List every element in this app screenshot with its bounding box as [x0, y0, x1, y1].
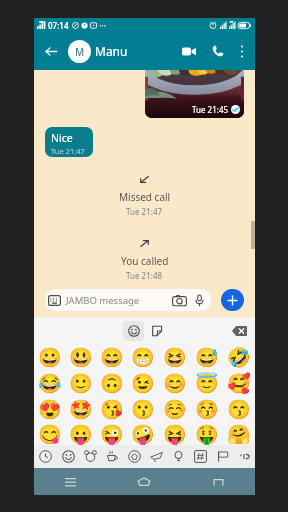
staticText: 😄: [100, 346, 124, 368]
staticText: 😚: [195, 398, 219, 420]
button[interactable]: 🤩: [65, 396, 96, 422]
button[interactable]: 😍: [34, 396, 65, 422]
button[interactable]: Call: [208, 41, 228, 61]
staticText: 😛: [69, 423, 93, 445]
button[interactable]: 😀: [34, 344, 65, 370]
button[interactable]: M: [68, 40, 91, 63]
button[interactable]: 🤑: [191, 422, 223, 445]
button[interactable]: 😁: [127, 344, 159, 370]
button[interactable]: 😉: [127, 370, 159, 396]
staticText: 😗: [131, 398, 155, 420]
button[interactable]: 🤗: [223, 422, 255, 445]
staticText: 😉: [131, 372, 155, 394]
staticText: 😁: [131, 346, 155, 368]
staticText: 😝: [163, 423, 187, 445]
button[interactable]: Send: [221, 289, 244, 311]
staticText: 😃: [69, 346, 93, 368]
staticText: ☺️: [163, 398, 187, 420]
button[interactable]: JAMBO message: [45, 289, 211, 311]
button[interactable]: 🤪: [127, 422, 159, 445]
button[interactable]: 😄: [96, 344, 127, 370]
button[interactable]: Stickers: [147, 321, 167, 341]
button[interactable]: ball: [123, 445, 145, 468]
staticText: 🤗: [227, 423, 251, 445]
staticText: 🤑: [195, 423, 219, 445]
button[interactable]: Emoji: [123, 321, 144, 341]
staticText: You called: [121, 254, 169, 268]
button[interactable]: 😃: [65, 344, 96, 370]
button[interactable]: 😅: [191, 344, 223, 370]
button[interactable]: Recents: [34, 468, 107, 495]
button[interactable]: 🙂: [65, 370, 96, 396]
button[interactable]: More options: [234, 43, 250, 59]
staticText: Missed call: [119, 190, 171, 204]
button[interactable]: 😛: [65, 422, 96, 445]
staticText: Tue 21:48: [126, 270, 163, 281]
button[interactable]: ☺️: [159, 396, 191, 422]
staticText: 😀: [38, 346, 62, 368]
staticText: 😙: [227, 398, 251, 420]
staticText: 🤩: [69, 398, 93, 420]
staticText: 07:14: [48, 20, 69, 31]
staticText: Tue 21:45: [192, 104, 229, 115]
staticText: Manu: [95, 43, 128, 59]
button[interactable]: flag: [211, 445, 233, 468]
staticText: 😋: [38, 423, 62, 445]
button[interactable]: Back: [181, 468, 255, 495]
button[interactable]: hash: [189, 445, 211, 468]
button[interactable]: 😋: [34, 422, 65, 445]
staticText: JAMBO message: [66, 294, 140, 307]
staticText: Nice: [51, 131, 73, 145]
staticText: 🥰: [227, 372, 251, 394]
button[interactable]: 😘: [96, 396, 127, 422]
button[interactable]: clock: [34, 445, 57, 468]
button[interactable]: 🤣: [223, 344, 255, 370]
button[interactable]: Back: [40, 40, 62, 62]
staticText: Tue 21:47: [51, 146, 85, 156]
button[interactable]: Tue 21:45: [145, 70, 244, 118]
button[interactable]: 🙃: [96, 370, 127, 396]
button[interactable]: smiley: [57, 445, 79, 468]
button[interactable]: bear: [79, 445, 101, 468]
button[interactable]: 😇: [191, 370, 223, 396]
button[interactable]: cup: [101, 445, 123, 468]
button[interactable]: plane: [145, 445, 167, 468]
button[interactable]: Missed call: [34, 176, 255, 217]
button[interactable]: bulb: [167, 445, 189, 468]
button[interactable]: 😜: [96, 422, 127, 445]
button[interactable]: Video call: [178, 40, 200, 62]
staticText: 🤪: [131, 423, 155, 445]
staticText: 😆: [163, 346, 187, 368]
staticText: 😘: [100, 398, 124, 420]
button[interactable]: 😆: [159, 344, 191, 370]
button[interactable]: 😂: [34, 370, 65, 396]
button[interactable]: Backspace: [230, 324, 248, 338]
staticText: 😂: [38, 372, 62, 394]
staticText: 🤣: [227, 346, 251, 368]
button[interactable]: 😊: [159, 370, 191, 396]
staticText: 😊: [163, 372, 187, 394]
button[interactable]: Nice: [45, 127, 93, 157]
button[interactable]: 😙: [223, 396, 255, 422]
button[interactable]: You called: [34, 240, 255, 281]
staticText: 🙃: [100, 372, 124, 394]
staticText: 😅: [195, 346, 219, 368]
staticText: 😍: [38, 398, 62, 420]
button[interactable]: 😚: [191, 396, 223, 422]
button[interactable]: 😗: [127, 396, 159, 422]
button[interactable]: Home: [107, 468, 181, 495]
staticText: 😇: [195, 372, 219, 394]
button[interactable]: face: [233, 445, 255, 468]
button[interactable]: 😝: [159, 422, 191, 445]
staticText: 😜: [100, 423, 124, 445]
staticText: Tue 21:47: [126, 206, 163, 217]
staticText: 🙂: [69, 372, 93, 394]
button[interactable]: 🥰: [223, 370, 255, 396]
staticText: M: [75, 45, 85, 59]
